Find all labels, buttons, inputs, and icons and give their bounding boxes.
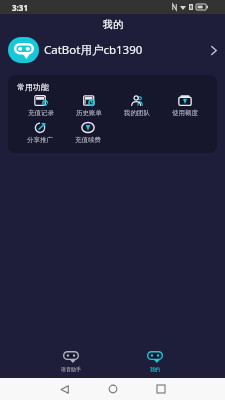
button[interactable]: CatBot用户cb1390 xyxy=(0,34,225,66)
staticText: 我的团队 xyxy=(124,109,150,117)
staticText: 我的 xyxy=(103,18,123,31)
staticText: 使用额度 xyxy=(172,109,198,117)
button[interactable]: 使用额度 xyxy=(161,95,209,117)
staticText: 语音助手 xyxy=(61,366,81,372)
staticText: 3:31 xyxy=(12,2,28,13)
staticText: CatBot用户cb1390 xyxy=(44,42,143,58)
button[interactable]: 我的团队 xyxy=(113,95,161,117)
button[interactable]: Back xyxy=(56,378,73,400)
button[interactable]: 充值记录 xyxy=(16,95,65,117)
button[interactable]: 历史账单 xyxy=(65,95,113,117)
button[interactable]: 分享推广 xyxy=(16,122,64,144)
staticText: 分享推广 xyxy=(27,136,53,144)
staticText: 充值续费 xyxy=(75,136,101,144)
staticText: 历史账单 xyxy=(76,109,102,117)
button[interactable]: 我的 xyxy=(136,351,173,372)
button[interactable]: 语音助手 xyxy=(52,351,89,372)
button[interactable]: Recents xyxy=(152,378,169,400)
staticText: 常用功能 xyxy=(17,82,49,92)
staticText: 我的 xyxy=(150,366,160,372)
button[interactable]: 充值续费 xyxy=(64,122,112,144)
button[interactable]: Home xyxy=(104,378,121,400)
staticText: 充值记录 xyxy=(28,109,54,117)
